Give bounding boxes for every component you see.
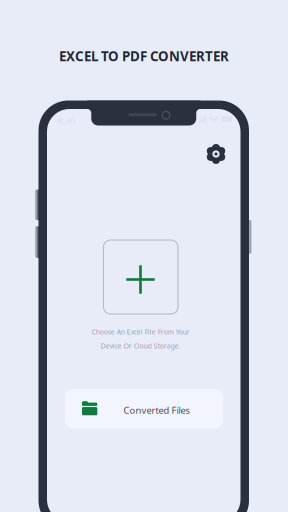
staticText: Converted Files [123,404,189,416]
button[interactable]: Settings [200,138,232,170]
staticText: Choose An Excel File From Your [92,328,190,336]
staticText: 8:30 [57,114,75,126]
staticText: Device Or Cloud Storage. [101,342,181,350]
button[interactable]: Choose Excel file [103,240,178,314]
button[interactable]: Converted Files [65,389,223,428]
staticText: EXCEL TO PDF CONVERTER [59,47,229,65]
